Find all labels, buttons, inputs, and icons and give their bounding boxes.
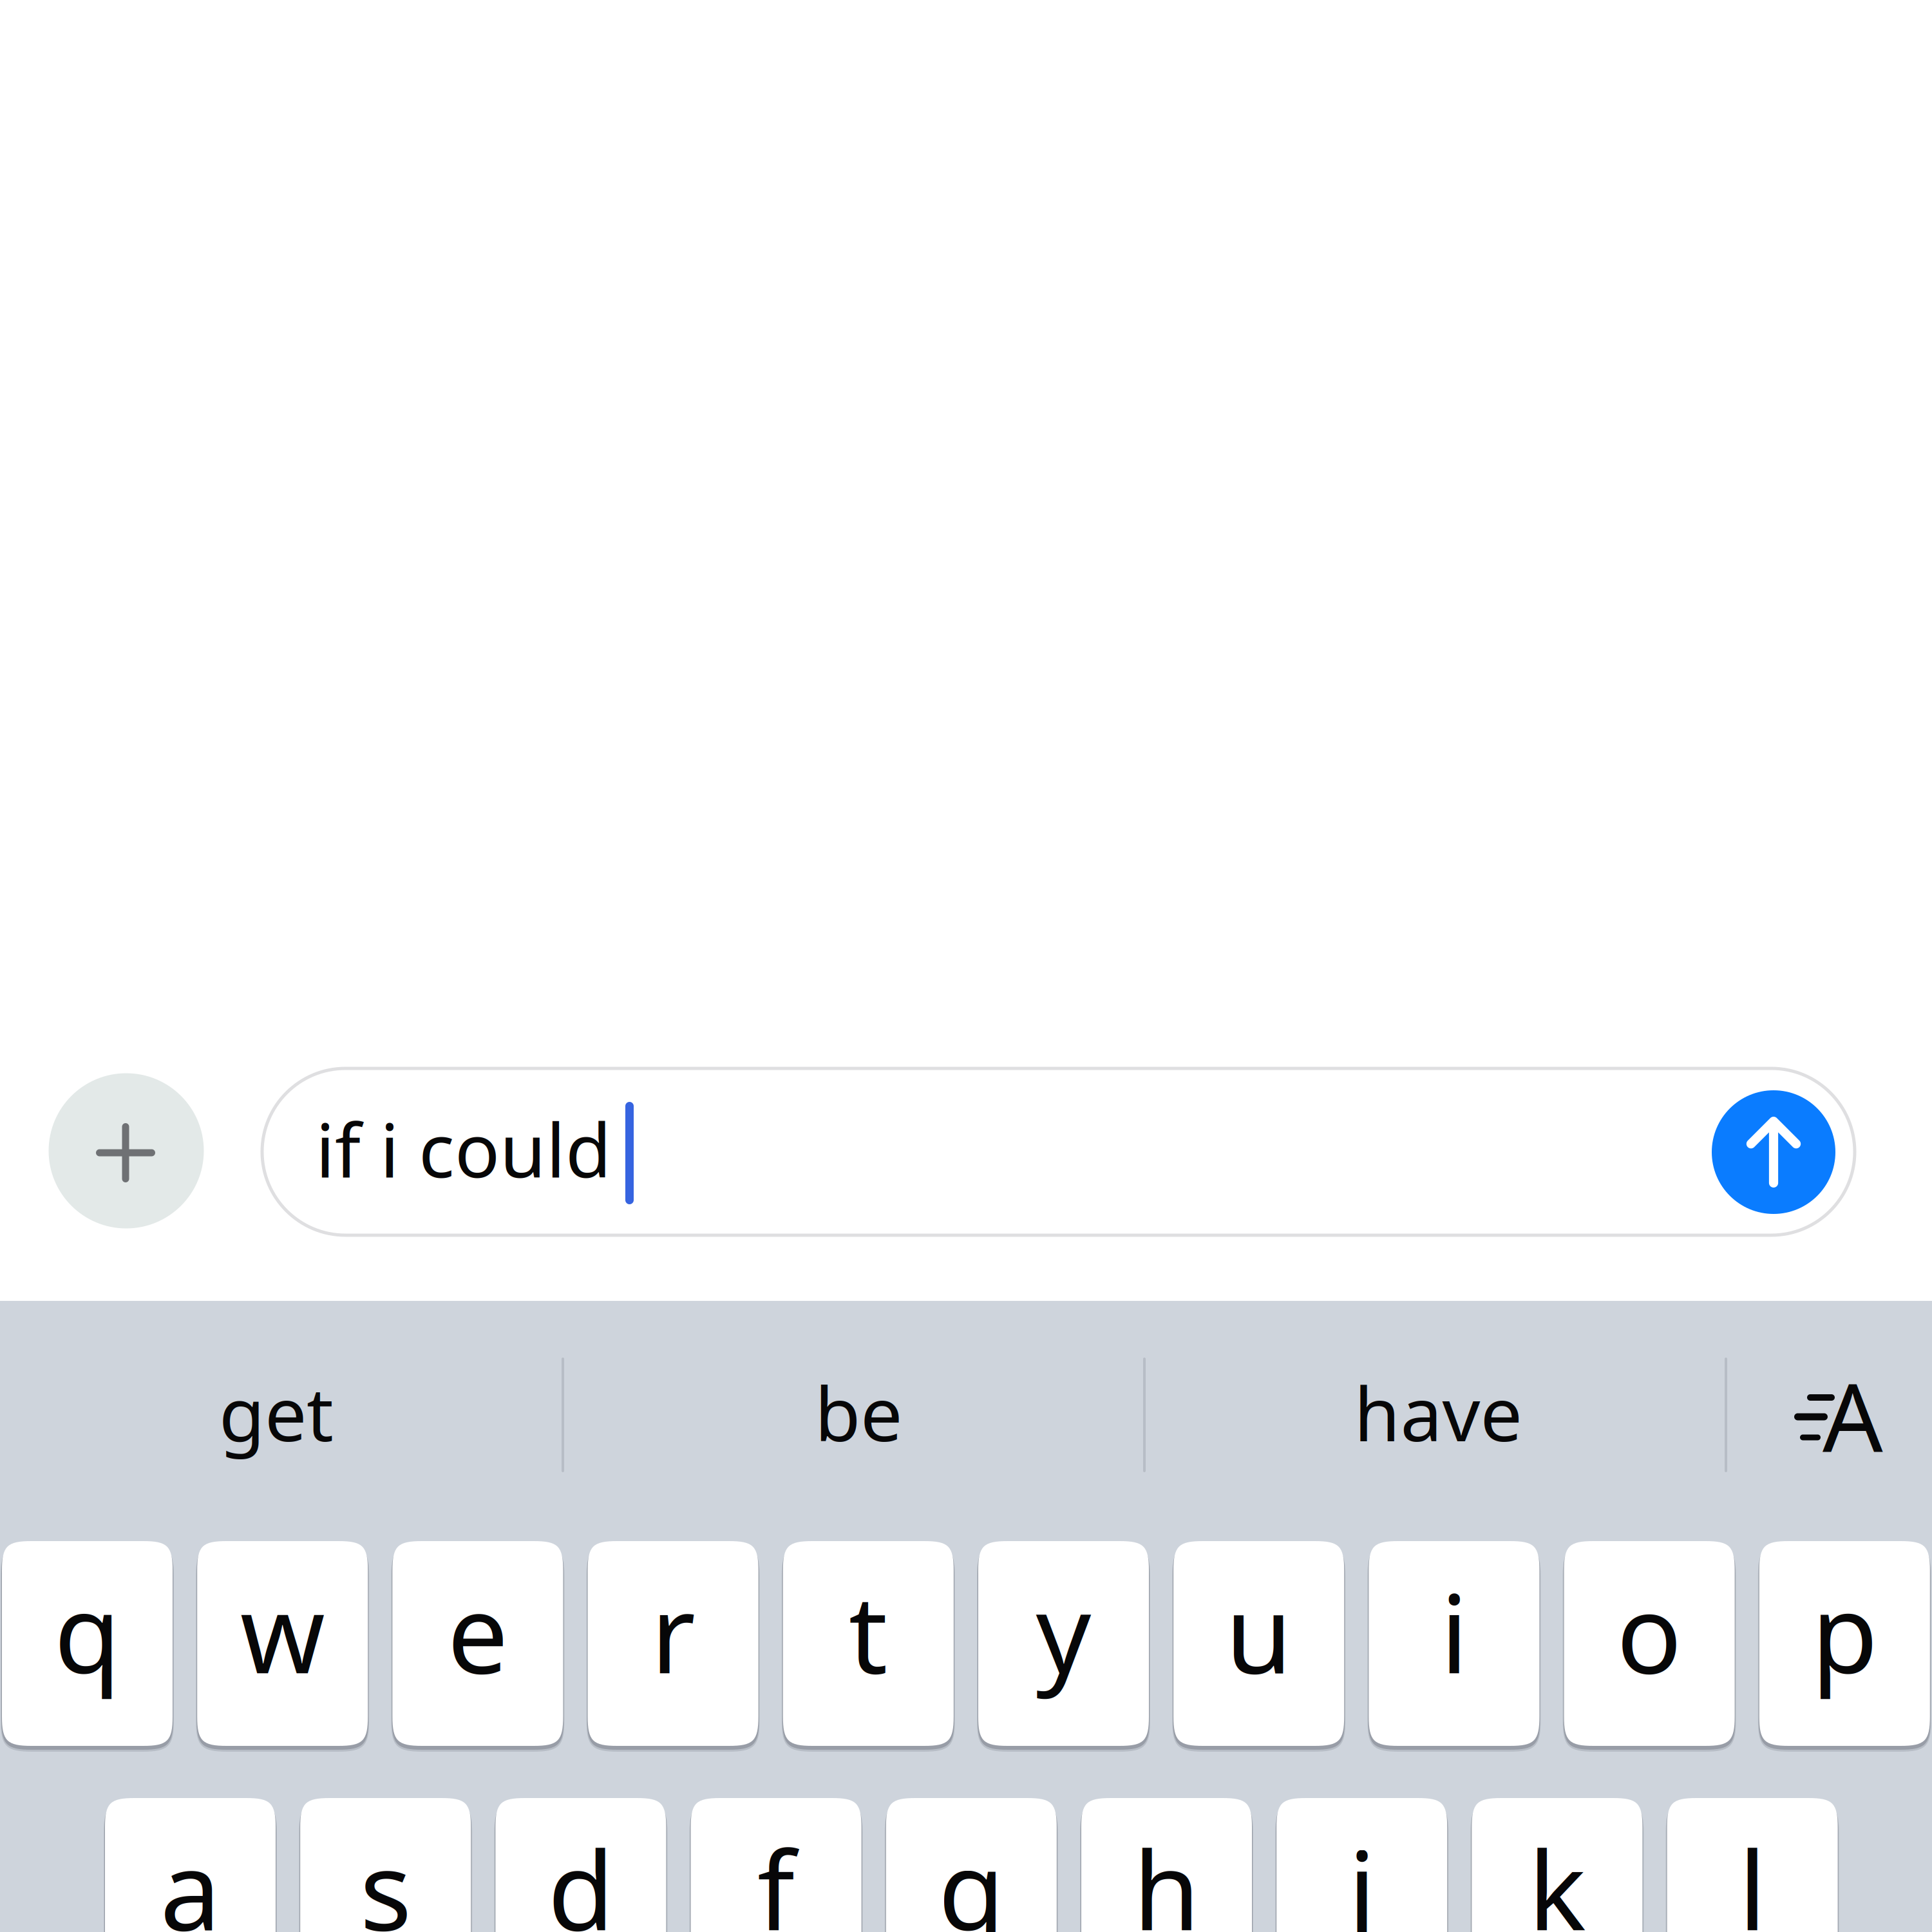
button[interactable]: r [586, 1537, 760, 1750]
staticText: h [1133, 1816, 1200, 1932]
button[interactable]: t [782, 1537, 955, 1750]
staticText: y [1036, 1559, 1091, 1703]
button[interactable]: a [104, 1794, 277, 1932]
button[interactable]: be [575, 1327, 1142, 1498]
button[interactable]: q [1, 1537, 174, 1750]
staticText: w [240, 1559, 325, 1703]
button[interactable]: f [689, 1794, 863, 1932]
button[interactable]: u [1172, 1537, 1345, 1750]
staticText: be [815, 1363, 902, 1462]
button[interactable]: h [1080, 1794, 1253, 1932]
button[interactable]: get [0, 1327, 560, 1498]
button[interactable]: e [391, 1537, 564, 1750]
staticText: f [757, 1816, 795, 1932]
button[interactable]: l [1666, 1794, 1839, 1932]
staticText: u [1225, 1559, 1292, 1703]
staticText: j [1348, 1816, 1376, 1932]
staticText: if i could [316, 1099, 611, 1198]
button[interactable]: have [1155, 1327, 1721, 1498]
staticText: o [1617, 1559, 1682, 1703]
button[interactable]: g [885, 1794, 1058, 1932]
button[interactable]: o [1563, 1537, 1736, 1750]
staticText: have [1354, 1363, 1522, 1462]
button[interactable]: w [196, 1537, 369, 1750]
staticText: a [160, 1816, 221, 1932]
button[interactable]: Send [1712, 1090, 1835, 1214]
button[interactable]: j [1275, 1794, 1448, 1932]
button[interactable]: Text formatting options [1726, 1329, 1932, 1501]
button[interactable]: s [299, 1794, 472, 1932]
button[interactable]: k [1471, 1794, 1644, 1932]
button[interactable]: y [977, 1537, 1150, 1750]
button[interactable]: p [1758, 1537, 1931, 1750]
staticText: r [651, 1559, 695, 1703]
staticText: p [1811, 1559, 1878, 1703]
staticText: t [849, 1559, 888, 1703]
staticText: l [1739, 1816, 1766, 1932]
button[interactable]: Add attachment [49, 1073, 204, 1228]
button[interactable]: Message [262, 1068, 1855, 1235]
staticText: e [447, 1559, 508, 1703]
button[interactable]: i [1367, 1537, 1541, 1750]
button[interactable]: d [494, 1794, 667, 1932]
staticText: A [1823, 1352, 1883, 1478]
staticText: k [1528, 1816, 1586, 1932]
staticText: s [360, 1816, 411, 1932]
staticText: g [938, 1816, 1005, 1932]
staticText: i [1440, 1559, 1468, 1703]
staticText: d [548, 1816, 614, 1932]
staticText: q [54, 1559, 120, 1703]
staticText: get [219, 1363, 334, 1462]
